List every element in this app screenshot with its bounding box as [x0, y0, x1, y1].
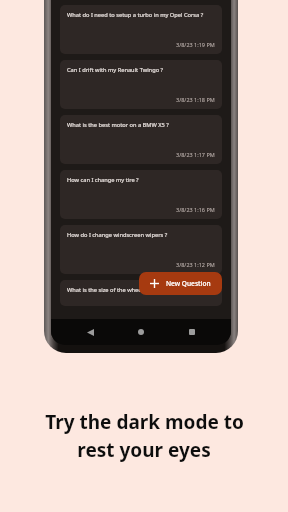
staticText: Can I drift with my Renault Twingo ? — [67, 66, 164, 74]
button[interactable]: How can I change my tire ? — [60, 170, 222, 219]
staticText: 3/8/23 1:12 PM — [176, 261, 215, 268]
button[interactable]: Can I drift with my Renault Twingo ? — [60, 60, 222, 109]
staticText: What do I need to setup a turbo in my Op… — [67, 11, 204, 19]
button[interactable]: What do I need to setup a turbo in my Op… — [60, 5, 222, 54]
staticText: How can I change my tire ? — [67, 176, 139, 184]
staticText: What is the size of the wheel on a Suzuk… — [67, 286, 204, 294]
button[interactable]: What is the size of the wheel on a Suzuk… — [60, 280, 222, 306]
staticText: rest your eyes — [77, 437, 211, 463]
staticText: 3/8/23 1:17 PM — [176, 151, 215, 158]
staticText: 3/8/23 1:19 PM — [176, 41, 215, 48]
staticText: 3/8/23 1:18 PM — [176, 96, 215, 103]
staticText: What is the best motor on a BMW X5 ? — [67, 121, 169, 129]
button[interactable]: Home — [129, 320, 153, 344]
button[interactable]: New Question — [139, 272, 222, 295]
staticText: Try the dark mode to — [45, 409, 244, 435]
button[interactable]: How do I change windscreen wipers ? — [60, 225, 222, 274]
button[interactable]: What is the best motor on a BMW X5 ? — [60, 115, 222, 164]
staticText: New Question — [166, 279, 211, 288]
button[interactable]: Recent apps — [180, 320, 204, 344]
staticText: How do I change windscreen wipers ? — [67, 231, 168, 239]
button[interactable]: Back — [78, 320, 102, 344]
staticText: 3/8/23 1:16 PM — [176, 206, 215, 213]
